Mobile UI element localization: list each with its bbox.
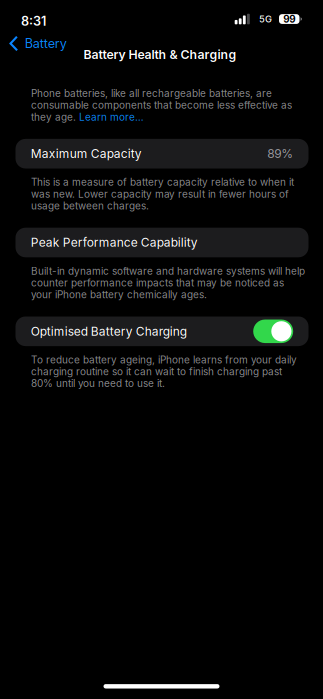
button[interactable]: Peak Performance Capability	[15, 228, 308, 257]
staticText: Phone batteries, like all rechargeable b…	[31, 87, 272, 99]
staticText: 80% until you need to use it.	[31, 377, 165, 389]
staticText: 89%	[267, 146, 293, 161]
staticText: To reduce battery ageing, iPhone learns …	[31, 354, 297, 366]
button[interactable]: Learn more…	[79, 111, 144, 123]
staticText: 99	[283, 13, 295, 25]
staticText: they age.	[31, 111, 79, 123]
staticText: Battery Health & Charging	[83, 47, 236, 62]
button[interactable]: Battery	[0, 28, 73, 58]
button[interactable]: Maximum Capacity	[15, 139, 308, 168]
staticText: Maximum Capacity	[31, 146, 142, 161]
staticText: was new. Lower capacity may result in fe…	[31, 188, 289, 200]
staticText: Peak Performance Capability	[31, 235, 198, 250]
staticText: 8:31	[21, 13, 46, 29]
staticText: This is a measure of battery capacity re…	[31, 176, 294, 188]
staticText: counter performance impacts that may be …	[31, 277, 284, 289]
staticText: Battery	[25, 36, 67, 51]
staticText: consumable components that become less e…	[31, 99, 292, 111]
staticText: Built-in dynamic software and hardware s…	[31, 265, 305, 277]
staticText: your iPhone battery chemically ages.	[31, 289, 207, 301]
staticText: Learn more…	[79, 111, 144, 123]
staticText: 5G	[259, 13, 272, 25]
button[interactable]: Optimised Battery Charging	[15, 316, 308, 346]
staticText: Optimised Battery Charging	[31, 324, 187, 338]
staticText: charging routine so it can wait to finis…	[31, 366, 282, 378]
staticText: usage between charges.	[31, 200, 149, 212]
